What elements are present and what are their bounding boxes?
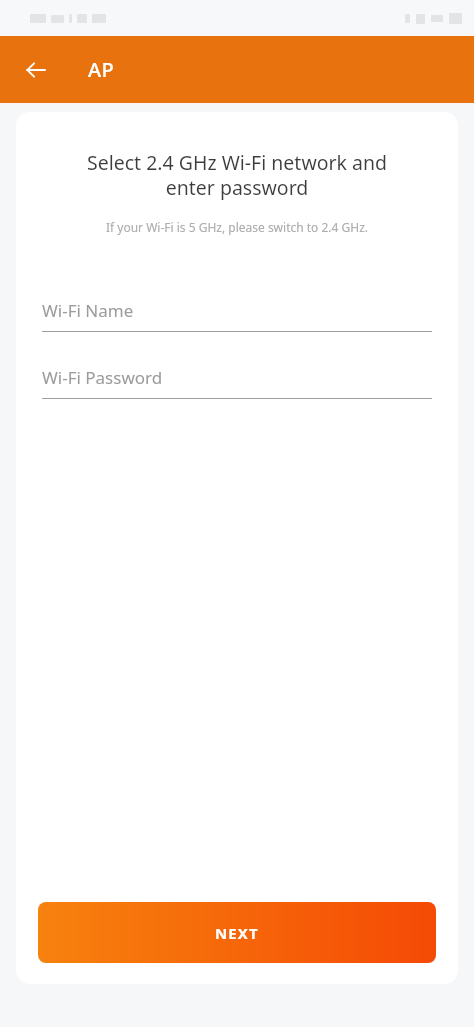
staticText: NEXT bbox=[215, 923, 259, 943]
button[interactable]: Wi-Fi Password bbox=[42, 362, 432, 399]
button[interactable]: NEXT bbox=[38, 902, 436, 963]
staticText: Wi-Fi Name bbox=[42, 299, 134, 322]
staticText: Wi-Fi Password bbox=[42, 366, 163, 389]
button[interactable]: Back bbox=[14, 48, 58, 92]
staticText: If your Wi-Fi is 5 GHz, please switch to… bbox=[32, 219, 442, 235]
staticText: AP bbox=[88, 56, 115, 83]
button[interactable]: Wi-Fi Name bbox=[42, 295, 432, 332]
staticText: Select 2.4 GHz Wi-Fi network and enter p… bbox=[34, 149, 440, 201]
